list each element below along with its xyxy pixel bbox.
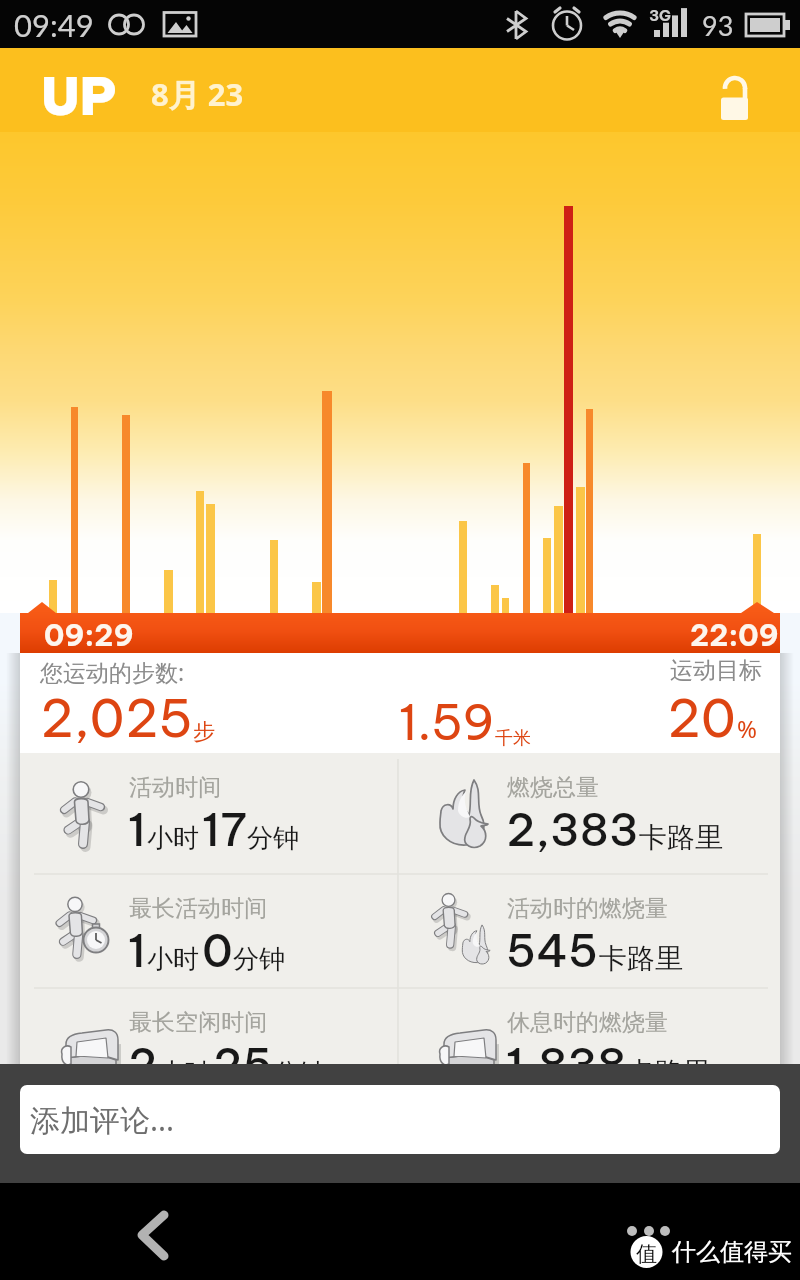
staticText: 什么值得买 [672, 1237, 792, 1267]
staticText: 1 [128, 922, 147, 979]
staticText: 1 [128, 801, 147, 858]
staticText [210, 1075, 213, 1090]
staticText: 小时 [147, 943, 199, 976]
staticText: 0 [202, 922, 233, 979]
button[interactable]: 最长空闲时间 [20, 988, 398, 1109]
staticText: 1,838 [506, 1036, 627, 1093]
button[interactable]: 活动时间 [20, 753, 398, 874]
staticText: 卡路里 [639, 820, 723, 855]
staticText: 09:49 [14, 6, 94, 43]
button[interactable]: Unlock [705, 68, 765, 128]
staticText: 最长活动时间 [129, 894, 267, 923]
staticText: 2 [128, 1036, 158, 1093]
staticText: 8月 23 [151, 73, 244, 115]
staticText: 您运动的步数: [40, 656, 185, 687]
staticText: 休息时的燃烧量 [507, 1008, 668, 1037]
staticText: 燃烧总量 [507, 773, 599, 802]
staticText: 545 [506, 922, 599, 979]
button[interactable]: UP [41, 63, 117, 129]
staticText: 千米 [495, 727, 531, 750]
staticText: 卡路里 [599, 941, 683, 976]
staticText: 25 [213, 1036, 273, 1093]
staticText: 93 [702, 9, 734, 41]
button[interactable]: 最长活动时间 [20, 874, 398, 995]
staticText: 添加评论... [30, 1099, 175, 1140]
staticText: 分钟 [247, 822, 299, 855]
staticText: 活动时的燃烧量 [507, 894, 668, 923]
staticText: 卡路里 [627, 1055, 711, 1090]
staticText: 步 [193, 718, 215, 746]
staticText: 17 [202, 801, 247, 858]
staticText: 值 [636, 1241, 657, 1267]
staticText: 最长空闲时间 [129, 1008, 267, 1037]
staticText: 活动时间 [129, 773, 221, 802]
button[interactable]: 您运动的步数: [20, 653, 780, 753]
staticText: 运动目标 [670, 656, 762, 685]
staticText: 09:29 [44, 617, 134, 654]
button[interactable]: 休息时的燃烧量 [398, 988, 776, 1109]
button[interactable]: 添加评论... [20, 1085, 780, 1154]
staticText: 22:09 [690, 617, 779, 654]
staticText: 1.59 [399, 692, 495, 753]
staticText: 分钟 [273, 1057, 325, 1090]
staticText: 2,025 [40, 685, 193, 751]
staticText: 分钟 [233, 943, 285, 976]
staticText: 小时 [147, 822, 199, 855]
staticText: 20 [667, 685, 737, 751]
button[interactable]: Back [122, 1195, 186, 1259]
button[interactable]: 燃烧总量 [398, 753, 776, 874]
staticText: 2,383 [506, 801, 639, 858]
staticText: 3G [649, 6, 671, 25]
button[interactable]: 活动时的燃烧量 [398, 874, 776, 995]
staticText: 小时 [158, 1057, 210, 1090]
staticText: % [737, 712, 757, 745]
